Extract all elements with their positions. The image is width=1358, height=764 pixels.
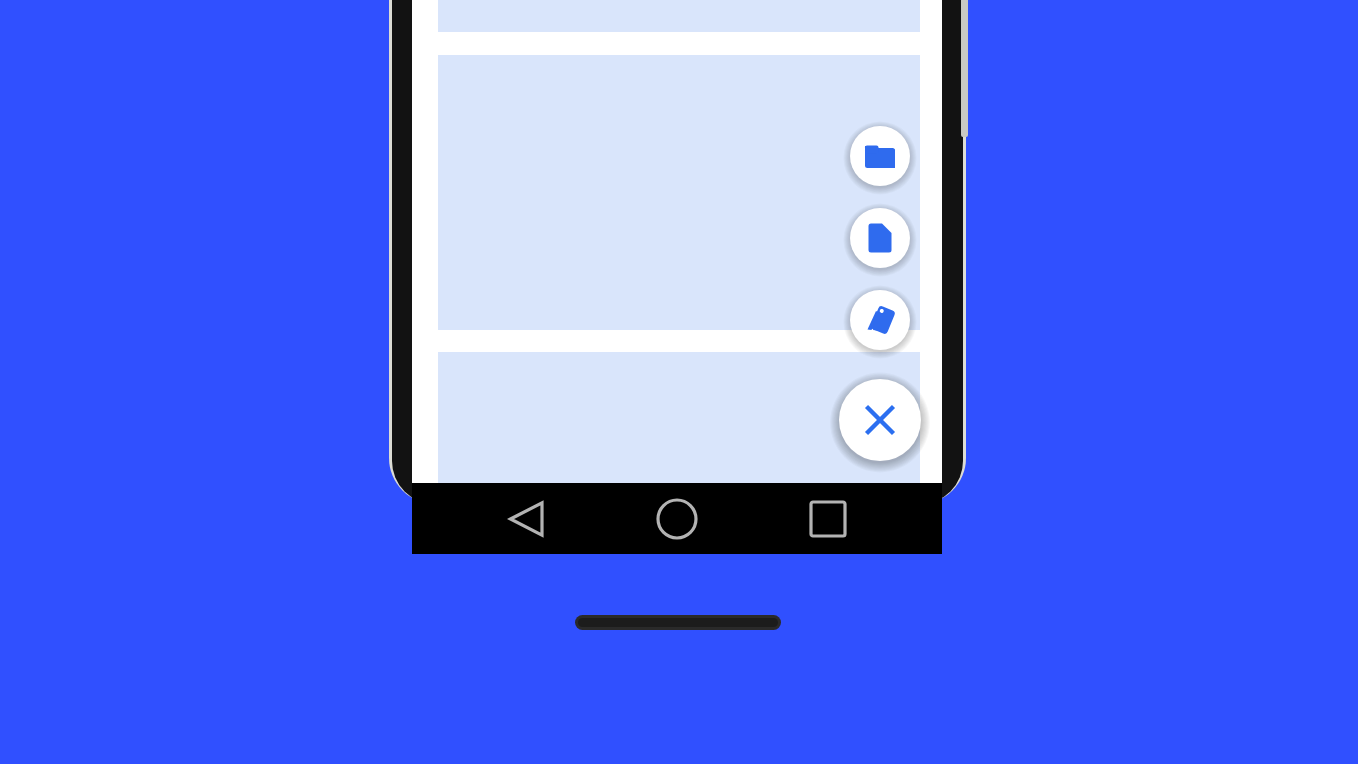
button[interactable]	[438, 352, 920, 483]
button[interactable]: New folder	[850, 126, 910, 186]
button[interactable]	[438, 55, 920, 330]
button[interactable]: Close menu	[839, 379, 921, 461]
button[interactable]: Back	[498, 489, 558, 549]
button[interactable]: Recent apps	[798, 489, 858, 549]
button[interactable]: New document	[850, 208, 910, 268]
button[interactable]: Home	[647, 489, 707, 549]
button[interactable]: New style	[850, 290, 910, 350]
